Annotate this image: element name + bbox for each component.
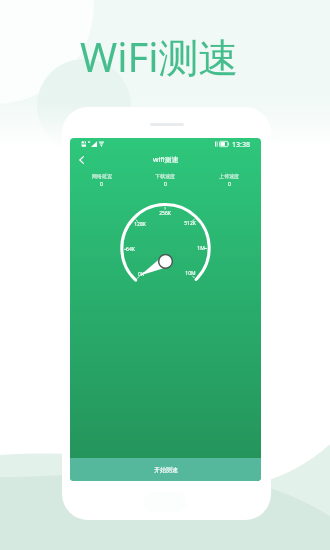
staticText: 开始测速 xyxy=(154,466,178,474)
staticText: 上传速度 xyxy=(219,173,239,179)
staticText: 网络延迟 xyxy=(92,173,112,179)
staticText: 下载速度 xyxy=(155,173,175,179)
staticText: 128K xyxy=(134,221,146,228)
staticText: 64K xyxy=(126,246,135,253)
button[interactable]: Back xyxy=(72,151,90,169)
staticText: 0K xyxy=(138,271,144,278)
staticText: WiFi测速 xyxy=(80,29,239,84)
staticText: 1M xyxy=(197,245,205,252)
staticText: 0 xyxy=(228,181,231,188)
staticText: 10M xyxy=(185,270,196,277)
staticText: 512K xyxy=(184,220,196,227)
staticText: wifi测速 xyxy=(153,155,179,165)
staticText: 0 xyxy=(164,181,167,188)
staticText: 0 xyxy=(100,181,103,188)
staticText: 256K xyxy=(159,210,171,217)
button[interactable]: 开始测速 xyxy=(70,458,261,481)
staticText: 13:38 xyxy=(232,140,250,150)
